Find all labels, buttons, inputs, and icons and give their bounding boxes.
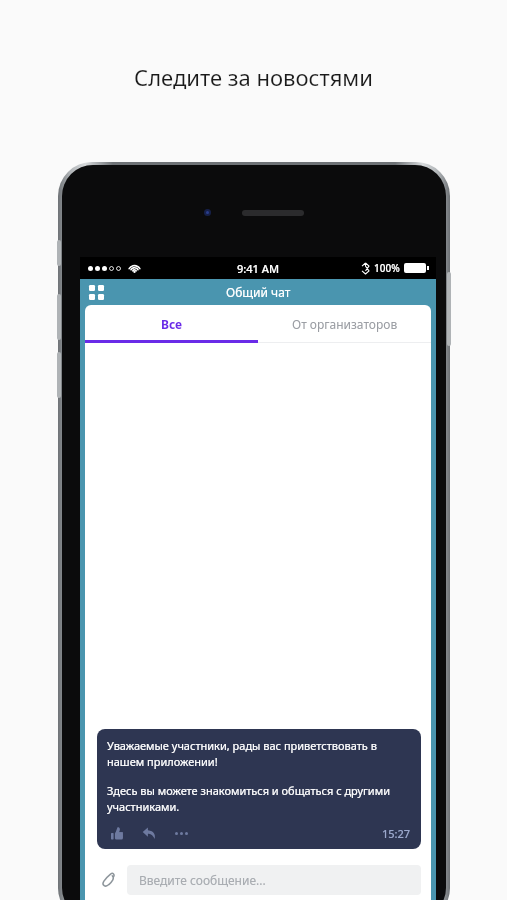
staticText: Следите за новостями bbox=[134, 62, 373, 92]
button[interactable]: Уважаемые участники, рады вас приветство… bbox=[97, 729, 421, 849]
staticText: 9:41 AM bbox=[237, 261, 280, 276]
button[interactable]: От организаторов bbox=[258, 305, 431, 343]
button[interactable]: Все bbox=[85, 305, 258, 343]
button[interactable]: Меню bbox=[84, 280, 108, 304]
staticText: Уважаемые участники, рады вас приветство… bbox=[107, 738, 411, 770]
button[interactable]: Введите сообщение... bbox=[127, 865, 421, 895]
staticText: От организаторов bbox=[292, 316, 398, 332]
staticText: Общий чат bbox=[226, 284, 291, 300]
staticText: Введите сообщение... bbox=[139, 872, 266, 888]
button[interactable]: Нравится bbox=[107, 823, 127, 843]
staticText: 15:27 bbox=[382, 826, 411, 841]
button[interactable]: Прикрепить файл bbox=[95, 867, 121, 893]
staticText: Здесь вы можете знакомиться и общаться с… bbox=[107, 783, 411, 815]
button[interactable]: Ответить bbox=[139, 823, 159, 843]
staticText: 100% bbox=[374, 261, 400, 275]
staticText: Все bbox=[161, 316, 183, 332]
button[interactable]: Ещё bbox=[171, 823, 191, 843]
